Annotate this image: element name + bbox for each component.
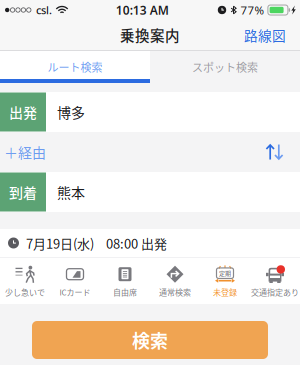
staticText: 路線図 — [244, 25, 286, 45]
button[interactable]: 路線図 — [236, 19, 300, 51]
button[interactable]: ICカード — [50, 259, 100, 303]
staticText: 交通指定あり — [251, 286, 299, 298]
staticText: スポット検索 — [192, 59, 258, 75]
button[interactable]: 交通指定あり — [250, 259, 300, 303]
button[interactable]: 検索 — [32, 321, 268, 359]
button[interactable]: 通常検索 — [150, 259, 200, 303]
staticText: ルート検索 — [47, 59, 102, 75]
staticText: csl. — [36, 2, 52, 17]
button[interactable]: スポット検索 — [150, 51, 300, 83]
staticText: 検索 — [132, 327, 168, 353]
staticText: 定期 — [219, 269, 231, 278]
staticText: 少し急いで — [5, 286, 45, 298]
staticText: 通常検索 — [159, 286, 191, 298]
button[interactable]: 発着を入れ替え — [258, 134, 300, 170]
button[interactable]: ルート検索 — [0, 51, 150, 83]
staticText: 10:13 AM — [116, 2, 169, 18]
staticText: 到着 — [9, 182, 37, 202]
staticText: ＋経由 — [4, 142, 46, 162]
button[interactable]: 到着 — [0, 172, 300, 212]
staticText: 博多 — [57, 102, 85, 122]
button[interactable]: ＋経由 — [0, 132, 46, 172]
button[interactable]: 7月19日(水) — [0, 229, 300, 257]
staticText: ICカード — [59, 286, 90, 298]
staticText: 77% — [240, 2, 264, 18]
button[interactable]: 少し急いで — [0, 259, 50, 303]
staticText: 自由席 — [113, 286, 137, 298]
staticText: 乗換案内 — [120, 24, 180, 45]
staticText: 出発 — [9, 102, 37, 122]
button[interactable]: 定期 — [200, 259, 250, 303]
button[interactable]: 出発 — [0, 92, 300, 132]
staticText: 7月19日(水) — [26, 234, 94, 252]
staticText: 未登録 — [213, 286, 237, 298]
button[interactable]: 自由席 — [100, 259, 150, 303]
staticText: 08:00 出発 — [106, 234, 167, 252]
staticText: 熊本 — [57, 182, 85, 202]
